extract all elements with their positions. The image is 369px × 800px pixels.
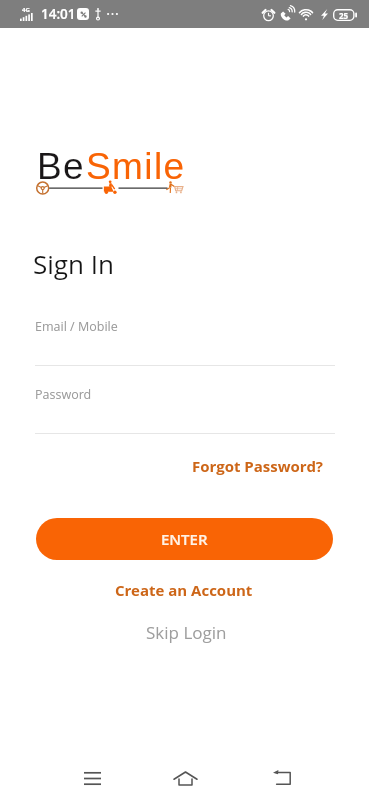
staticText: ENTER	[161, 529, 208, 549]
staticText: Be	[37, 146, 86, 187]
staticText: 25	[339, 10, 349, 21]
button[interactable]: Email / Mobile	[35, 318, 335, 366]
button[interactable]: Forgot Password?	[192, 456, 324, 476]
staticText: Skip Login	[146, 621, 227, 644]
staticText: 4G	[22, 6, 30, 14]
staticText: Create an Account	[115, 580, 253, 600]
staticText: Password	[35, 386, 92, 403]
button[interactable]: Menu	[68, 762, 117, 794]
button[interactable]: Back	[257, 762, 306, 794]
button[interactable]: Create an Account	[115, 580, 253, 600]
button[interactable]: Password	[35, 386, 335, 434]
staticText: Sign In	[33, 246, 115, 281]
staticText: Smile	[86, 146, 186, 187]
button[interactable]: ENTER	[36, 518, 333, 560]
button[interactable]: Skip Login	[146, 621, 227, 644]
staticText: Email / Mobile	[35, 318, 118, 335]
staticText: Forgot Password?	[192, 456, 324, 476]
button[interactable]: Home	[161, 762, 210, 794]
staticText: 14:01	[41, 5, 76, 23]
